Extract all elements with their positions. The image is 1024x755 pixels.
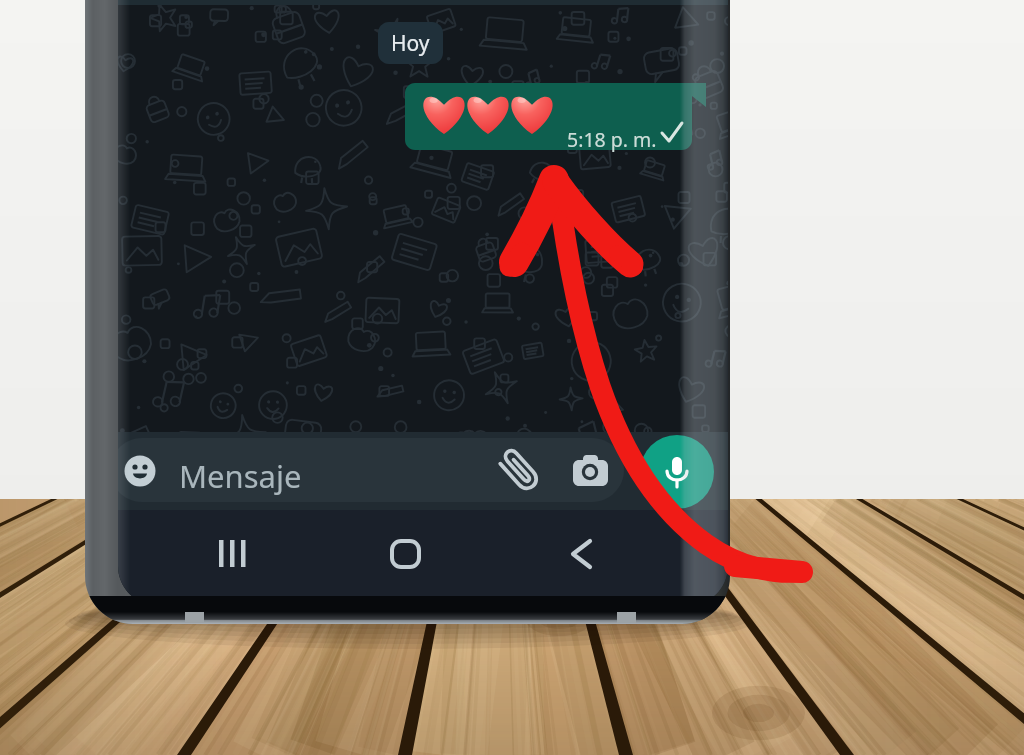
button[interactable]: Hoy — [378, 22, 443, 64]
button[interactable]: Attach file — [498, 450, 542, 494]
button[interactable]: Home — [371, 520, 441, 588]
button[interactable]: Recent apps — [196, 520, 266, 588]
button[interactable]: Message input field — [118, 438, 624, 502]
button[interactable]: Camera — [569, 450, 613, 494]
button[interactable]: Message: three hearts, 5:18 p. m. — [405, 83, 708, 150]
button[interactable]: Back — [547, 520, 617, 588]
button[interactable]: Emoji keyboard — [120, 450, 162, 494]
button[interactable]: Record voice message — [640, 435, 714, 509]
